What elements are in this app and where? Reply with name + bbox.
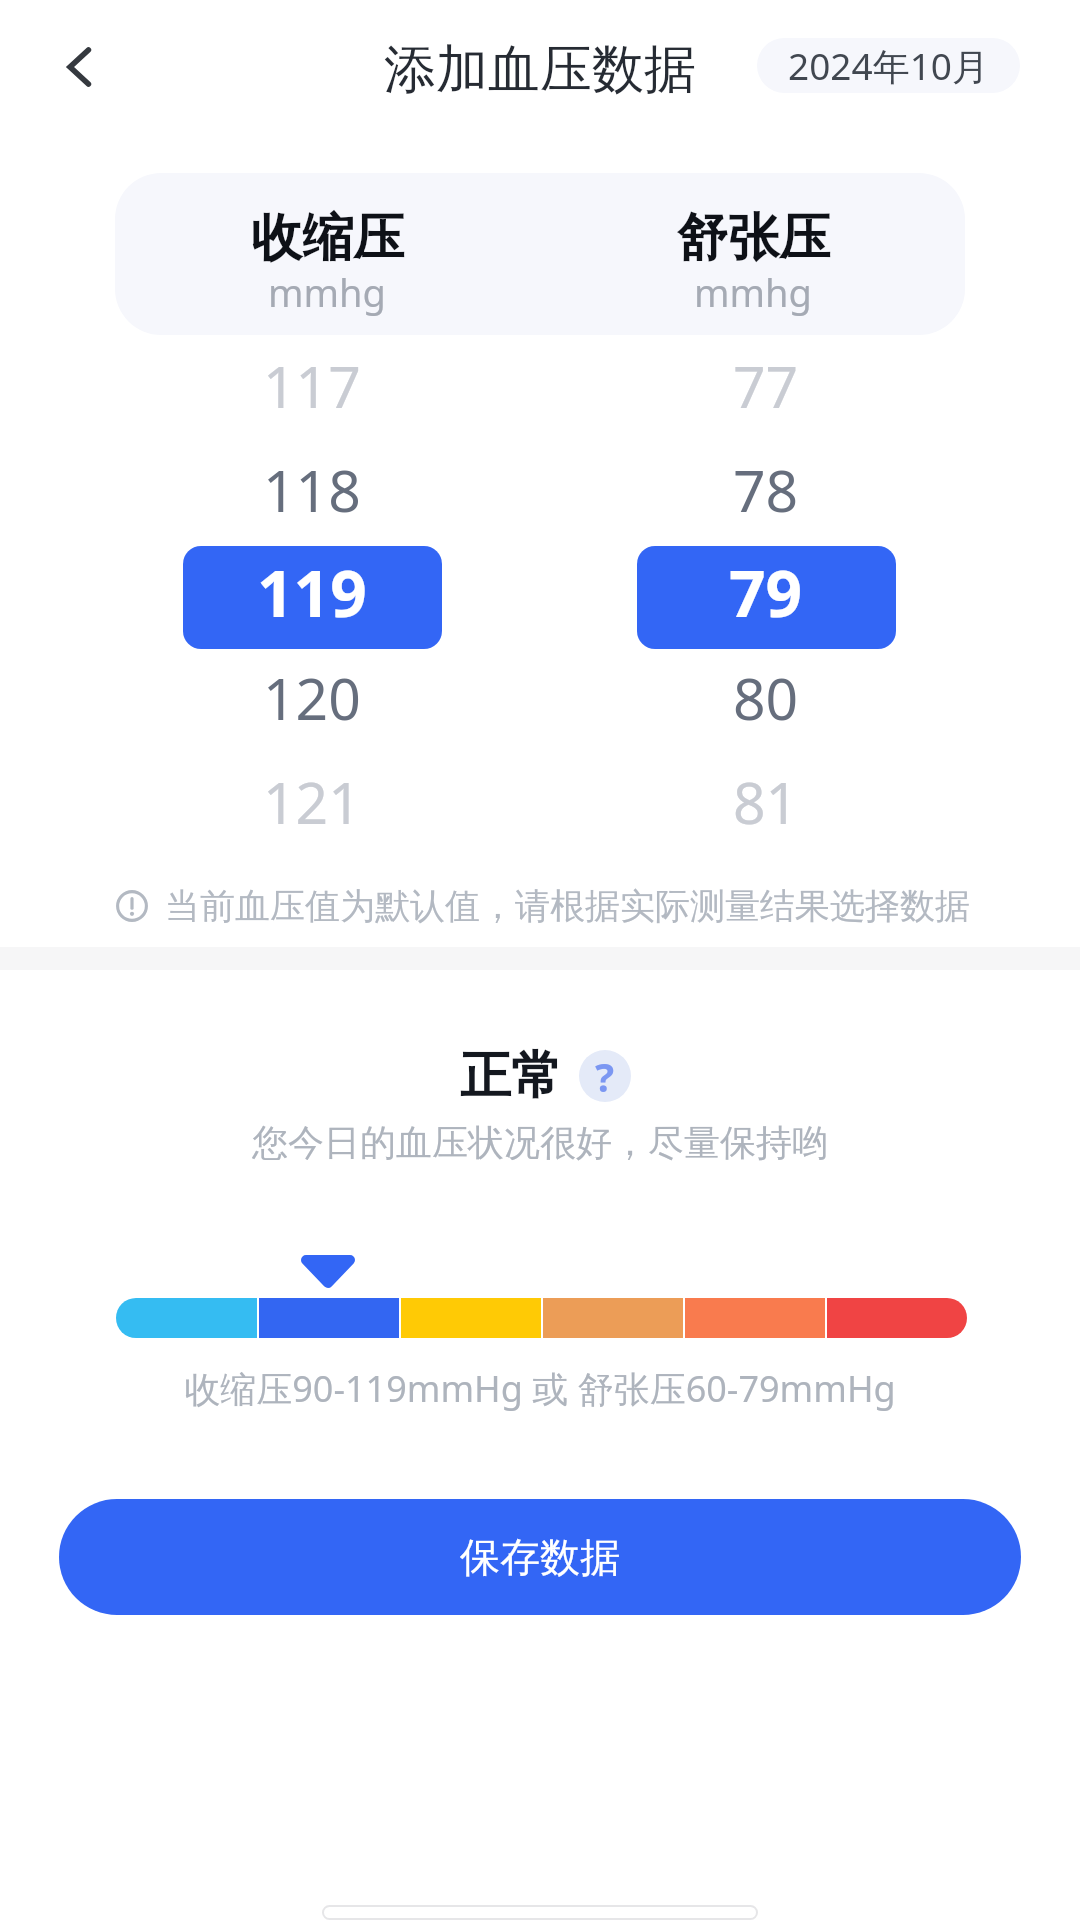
button[interactable]: 120 (182, 647, 442, 751)
staticText: 2024年10月 (788, 40, 989, 91)
staticText: 77 (733, 347, 799, 425)
staticText: 78 (733, 451, 799, 529)
button[interactable]: 帮助 (579, 1050, 631, 1102)
button[interactable]: 80 (636, 647, 896, 751)
staticText: 当前血压值为默认值，请根据实际测量结果选择数据 (165, 884, 970, 928)
button[interactable]: 返回 (36, 25, 120, 109)
staticText: 79 (729, 549, 803, 636)
staticText: mmhg (268, 266, 386, 318)
staticText: mmhg (694, 266, 812, 318)
button[interactable]: 118 (182, 439, 442, 543)
staticText: 80 (733, 659, 799, 737)
staticText: 119 (257, 549, 367, 636)
button[interactable]: 保存数据 (59, 1499, 1021, 1615)
button[interactable]: 81 (636, 751, 896, 855)
button[interactable]: 2024年10月 (757, 38, 1020, 93)
button[interactable]: 121 (182, 751, 442, 855)
staticText: ? (595, 1050, 615, 1101)
staticText: 添加血压数据 (384, 37, 696, 103)
button[interactable]: 117 (182, 335, 442, 439)
staticText: 收缩压90-119mmHg 或 舒张压60-79mmHg (0, 1364, 1080, 1413)
staticText: 121 (263, 763, 361, 841)
staticText: 收缩压 (251, 206, 404, 270)
button[interactable]: 78 (636, 439, 896, 543)
button[interactable]: 77 (636, 335, 896, 439)
staticText: 正常 (460, 1044, 562, 1108)
button[interactable]: 79 (636, 543, 896, 647)
staticText: 117 (263, 347, 361, 425)
staticText: 您今日的血压状况很好，尽量保持哟 (0, 1120, 1080, 1165)
staticText: 舒张压 (677, 206, 830, 270)
staticText: 81 (733, 763, 799, 841)
staticText: 120 (263, 659, 361, 737)
staticText: 保存数据 (460, 1532, 620, 1582)
staticText: 118 (263, 451, 361, 529)
button[interactable]: 119 (182, 543, 442, 647)
